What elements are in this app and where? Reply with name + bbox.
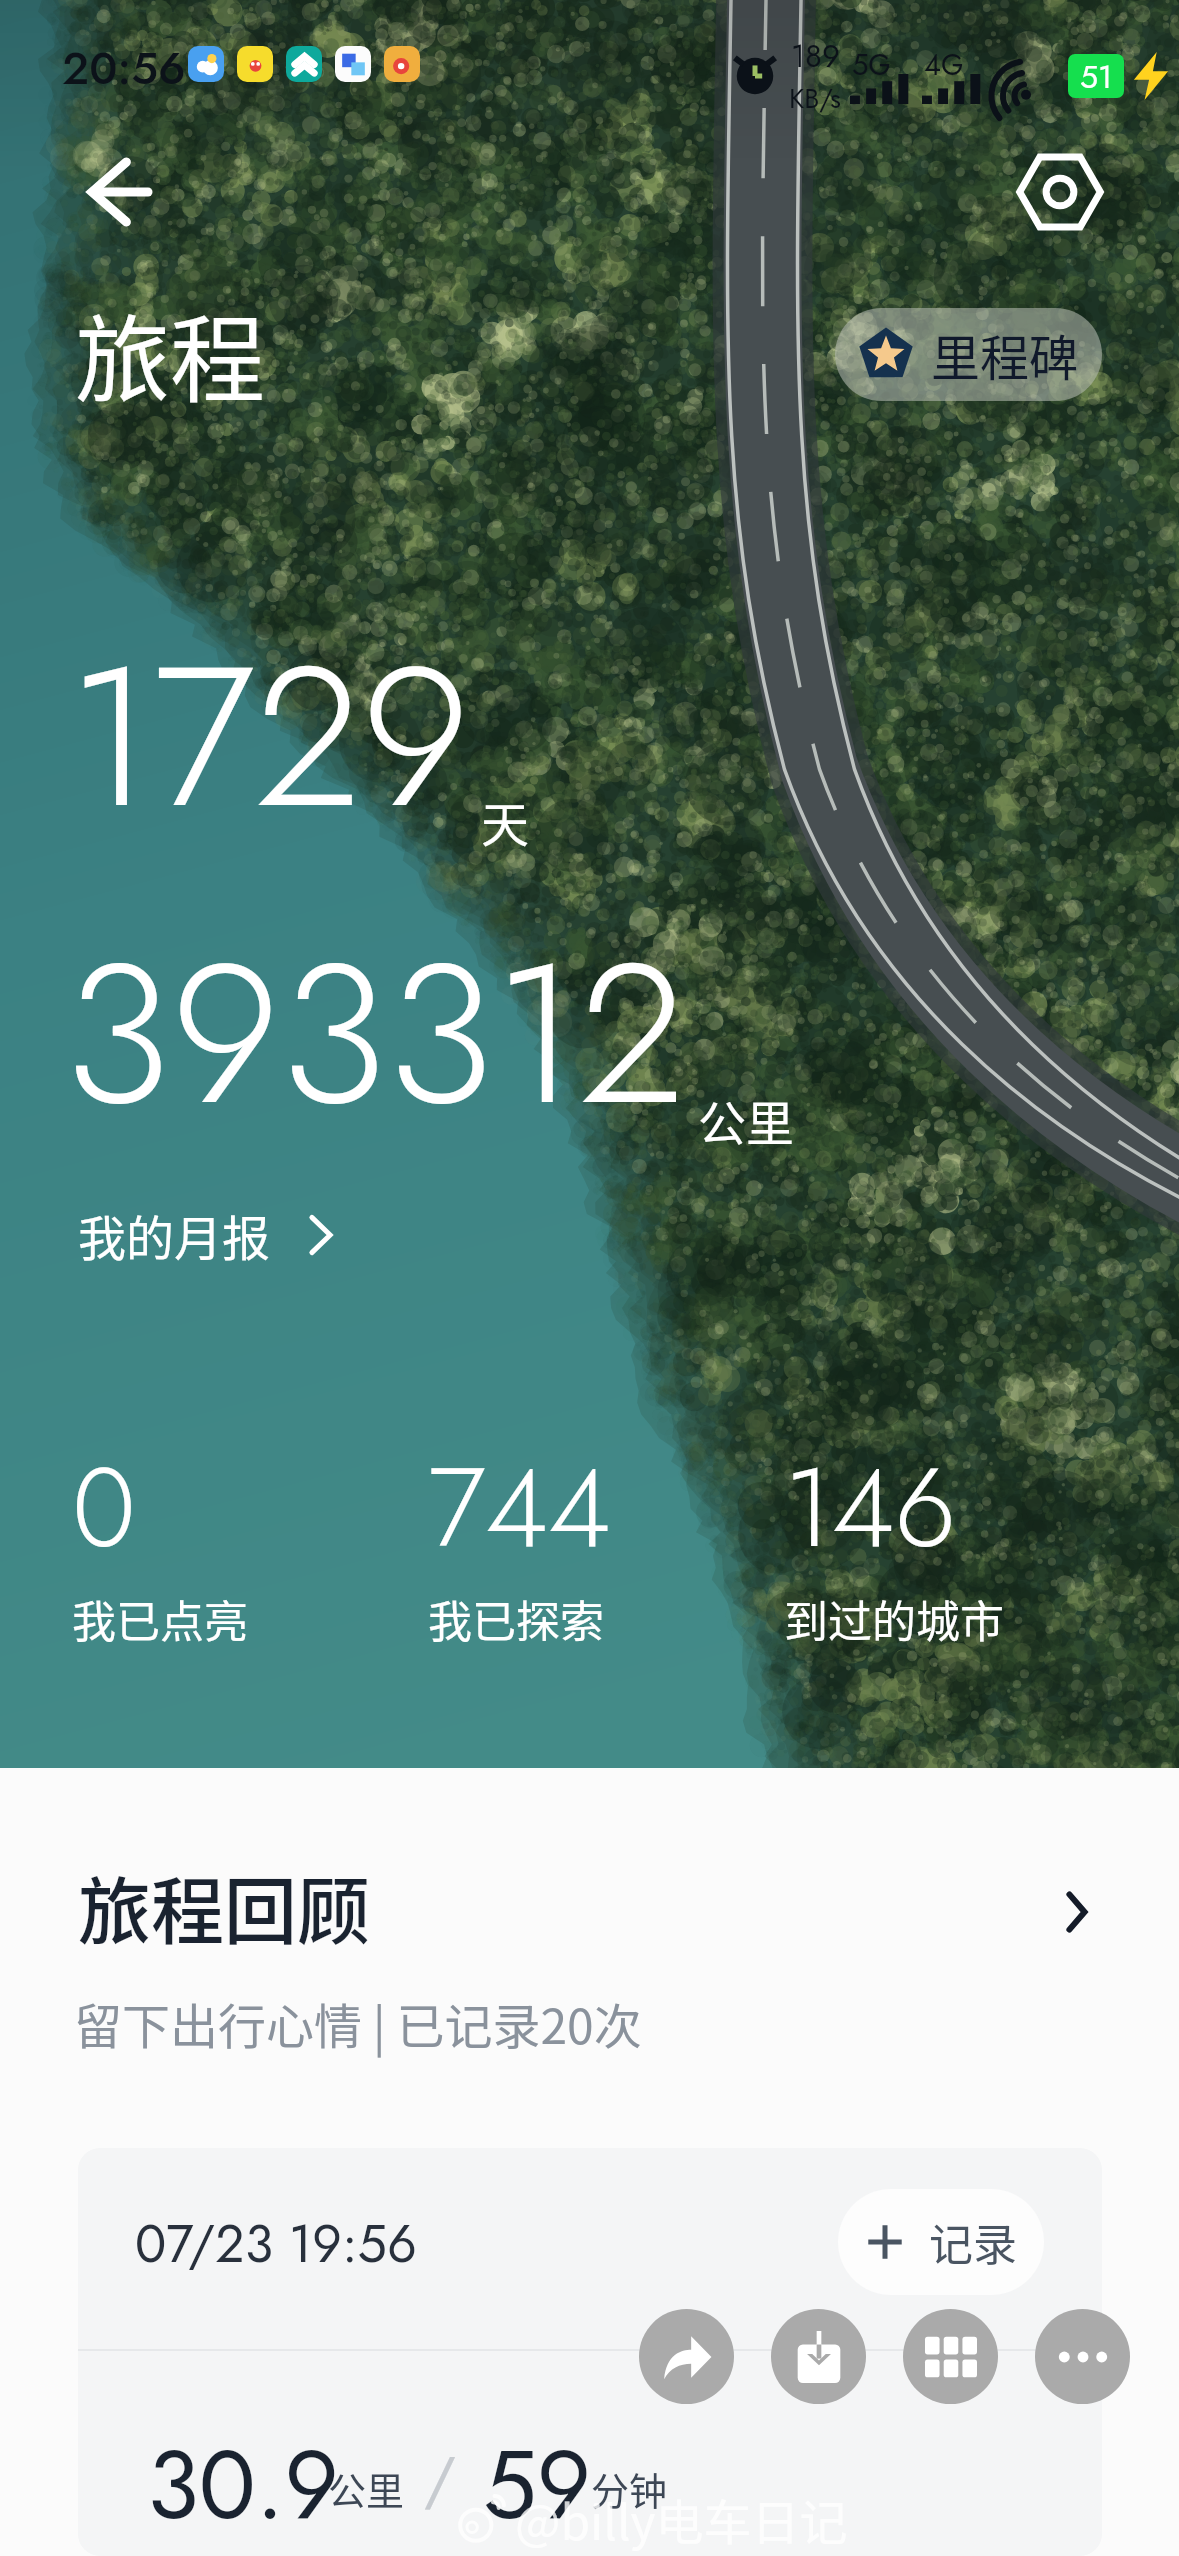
staticText: 天 bbox=[481, 786, 530, 856]
button[interactable]: Grid bbox=[903, 2309, 998, 2404]
button[interactable]: Settings bbox=[1018, 150, 1102, 234]
staticText: 记录 bbox=[929, 2210, 1017, 2274]
staticText: 旅程 bbox=[75, 285, 266, 423]
staticText: 744 bbox=[428, 1428, 611, 1587]
staticText: 公里 bbox=[698, 1085, 795, 1155]
staticText: 189 bbox=[791, 34, 840, 79]
button[interactable]: 里程碑 bbox=[835, 308, 1102, 401]
staticText: 146 bbox=[784, 1428, 957, 1587]
staticText: 里程碑 bbox=[931, 319, 1079, 390]
button[interactable]: 07/23 19:56 bbox=[78, 2148, 1102, 2556]
staticText: 07/23 19:56 bbox=[135, 2206, 417, 2281]
button[interactable]: Back bbox=[88, 158, 152, 226]
staticText: 0 bbox=[72, 1428, 136, 1587]
staticText: / bbox=[424, 2434, 456, 2524]
staticText: 20:56 bbox=[62, 36, 186, 101]
staticText: @billy电车日记 bbox=[515, 2484, 848, 2554]
staticText: 分钟 bbox=[591, 2461, 668, 2516]
staticText: 4G bbox=[924, 44, 964, 86]
staticText: 393312 bbox=[64, 893, 686, 1175]
button[interactable]: More bbox=[1035, 2309, 1130, 2404]
button[interactable]: Download bbox=[771, 2309, 866, 2404]
staticText: 30.9 bbox=[147, 2416, 340, 2553]
staticText: 到过的城市 bbox=[784, 1587, 1004, 1651]
staticText: 51 bbox=[1080, 54, 1113, 98]
staticText: 5G bbox=[852, 44, 891, 86]
staticText: 我已探索 bbox=[428, 1587, 604, 1651]
button[interactable]: Share bbox=[639, 2309, 734, 2404]
staticText: 我已点亮 bbox=[72, 1587, 248, 1651]
staticText: 公里 bbox=[328, 2461, 405, 2516]
button[interactable]: 记录 bbox=[838, 2189, 1044, 2295]
button[interactable]: 我的月报 bbox=[70, 1192, 341, 1278]
staticText: 59 bbox=[483, 2416, 592, 2553]
button[interactable]: 旅程回顾 bbox=[0, 1853, 1179, 1959]
staticText: 1729 bbox=[68, 596, 471, 878]
staticText: 我的月报 bbox=[78, 1200, 271, 1270]
staticText: 留下出行心情 | 已记录20次 bbox=[74, 1988, 642, 2058]
staticText: KB/s bbox=[789, 79, 842, 118]
staticText: 旅程回顾 bbox=[78, 1853, 370, 1959]
